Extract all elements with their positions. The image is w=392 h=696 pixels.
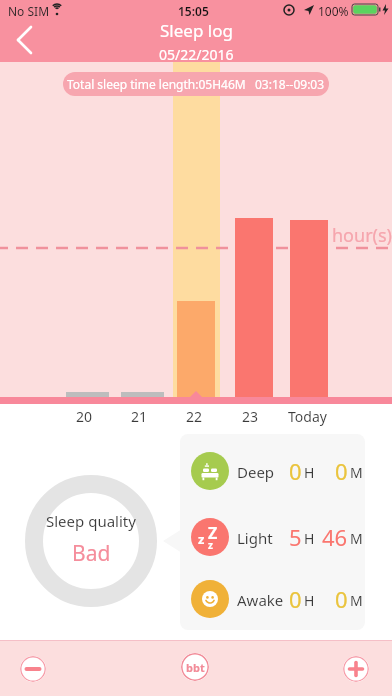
- staticText: hour(s): [332, 223, 392, 248]
- staticText: Sleep quality: [46, 511, 136, 531]
- staticText: 15:05: [178, 3, 209, 19]
- staticText: Today: [288, 407, 327, 426]
- staticText: Light: [237, 528, 273, 548]
- staticText: 22: [186, 407, 203, 426]
- staticText: Z: [208, 522, 218, 544]
- staticText: 21: [131, 407, 148, 426]
- staticText: H: [304, 529, 315, 548]
- staticText: z: [198, 530, 205, 548]
- staticText: H: [304, 463, 315, 482]
- staticText: 0: [335, 584, 348, 614]
- staticText: M: [350, 591, 363, 610]
- staticText: 20: [76, 407, 93, 426]
- button[interactable]: [343, 656, 369, 682]
- staticText: H: [304, 591, 315, 610]
- button[interactable]: [6, 22, 42, 58]
- button[interactable]: bbt: [181, 653, 209, 681]
- staticText: Deep: [237, 462, 275, 482]
- staticText: 5: [289, 522, 302, 552]
- staticText: No SIM: [8, 3, 50, 19]
- staticText: 0: [289, 584, 302, 614]
- staticText: M: [350, 529, 363, 548]
- staticText: 23: [242, 407, 259, 426]
- staticText: 0: [335, 456, 348, 486]
- staticText: Total sleep time length:05H46M 03:18--09…: [67, 76, 325, 92]
- button[interactable]: Total sleep time length:05H46M 03:18--09…: [63, 72, 329, 96]
- staticText: z: [208, 538, 213, 552]
- staticText: 46: [322, 522, 348, 552]
- staticText: Bad: [72, 539, 111, 568]
- staticText: 05/22/2016: [159, 45, 234, 64]
- staticText: 100%: [318, 3, 349, 19]
- button[interactable]: [20, 656, 46, 682]
- staticText: 0: [289, 456, 302, 486]
- staticText: bbt: [186, 660, 205, 675]
- staticText: Sleep log: [160, 19, 233, 42]
- staticText: M: [350, 463, 363, 482]
- staticText: Awake: [237, 590, 284, 610]
